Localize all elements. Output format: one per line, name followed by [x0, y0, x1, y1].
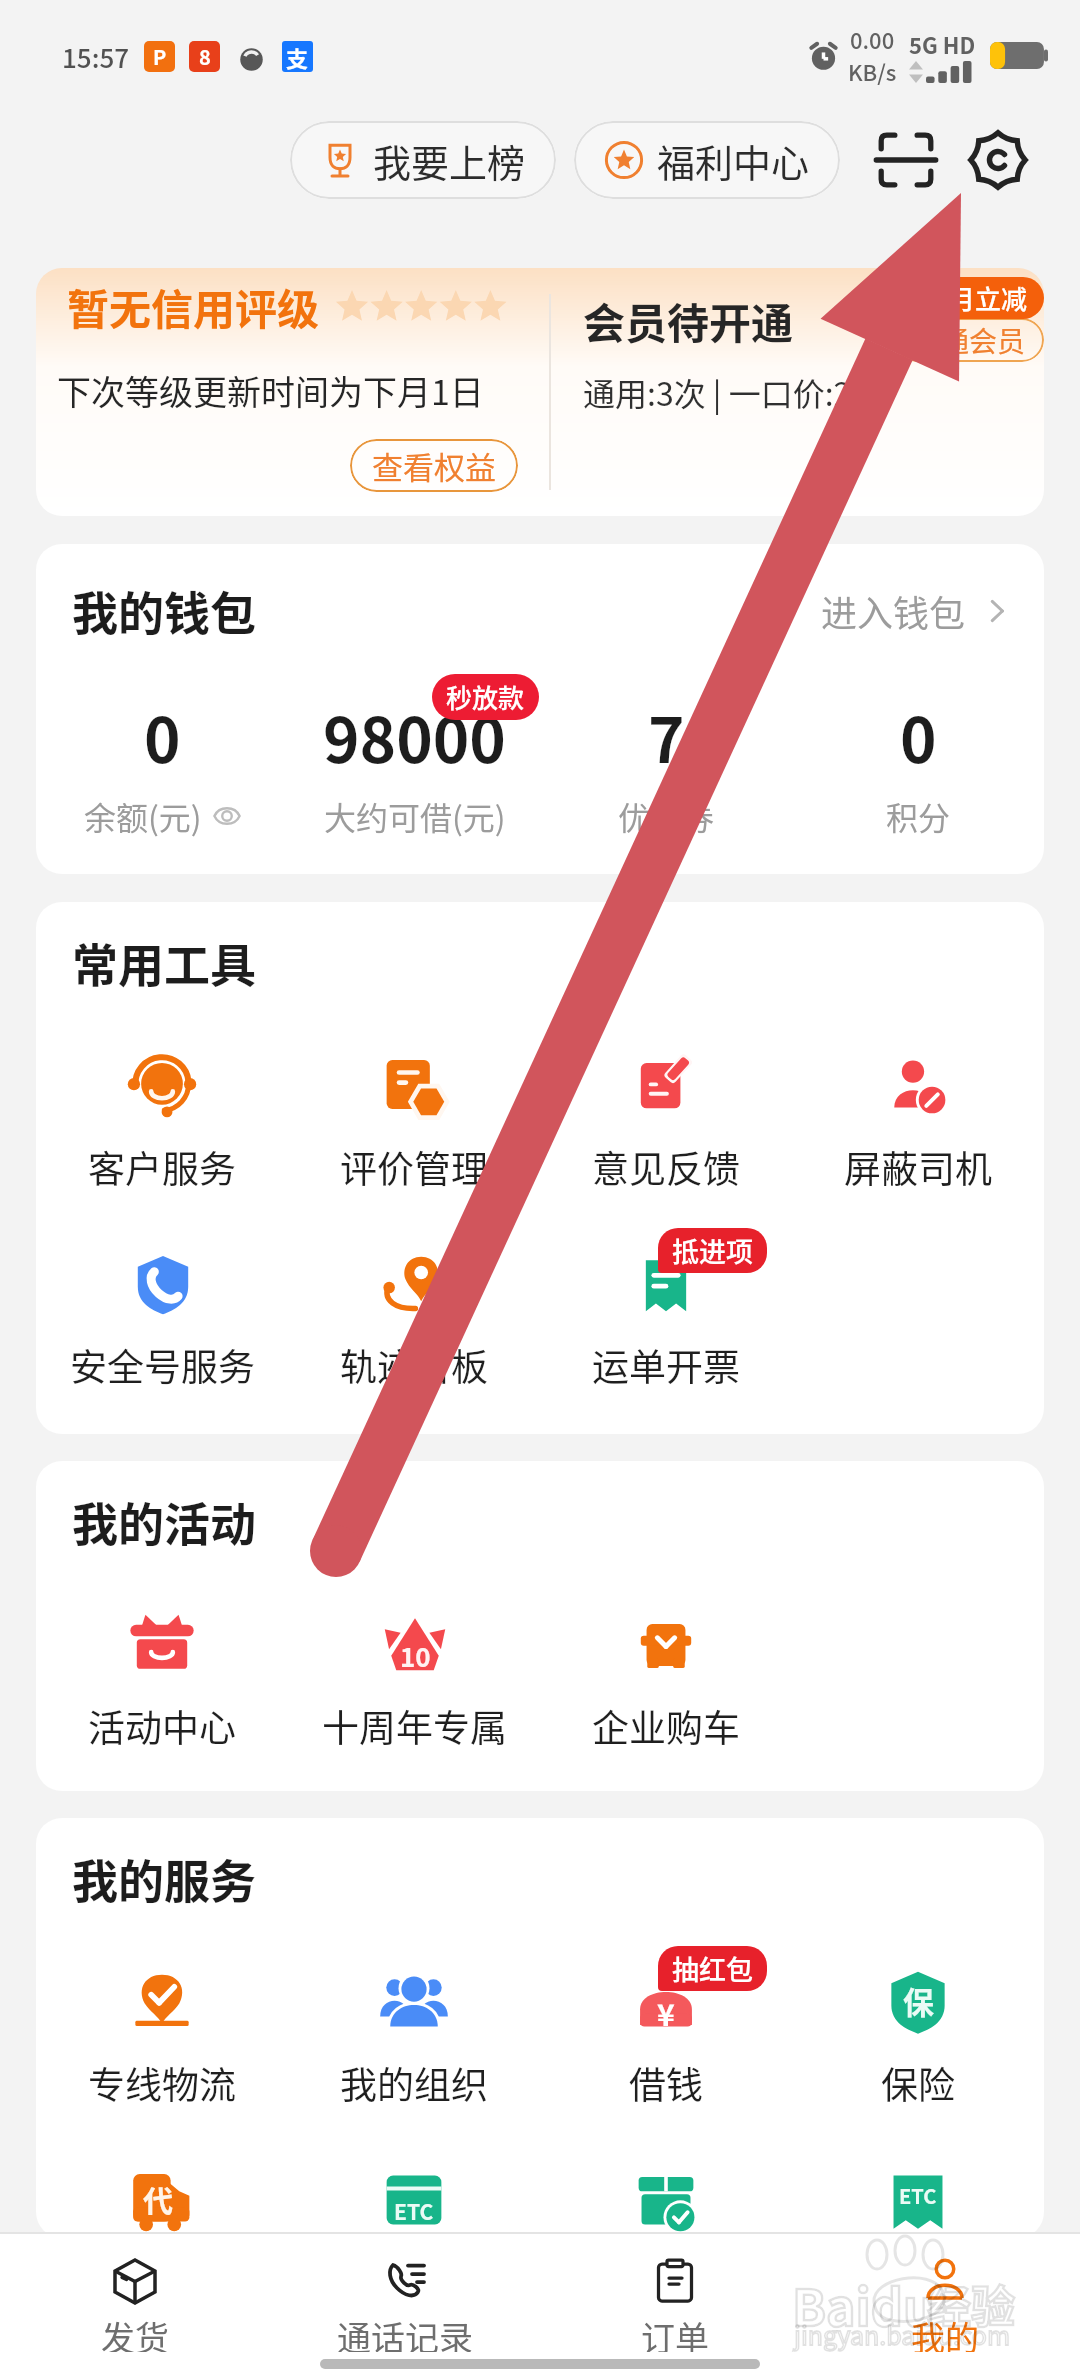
button[interactable]: 进入钱包 [821, 585, 1014, 637]
button[interactable]: 7 [540, 691, 792, 839]
staticText: 抵进项 [672, 1231, 753, 1270]
staticText: 评价管理 [340, 1140, 488, 1194]
staticText: 活动中心 [88, 1699, 236, 1753]
staticText: 10 [400, 1637, 431, 1675]
button[interactable]: 保 [792, 1964, 1044, 2110]
button[interactable]: 订单 [540, 2256, 810, 2352]
staticText: 余额(元) [84, 793, 202, 839]
staticText: 屏蔽司机 [844, 1140, 992, 1194]
staticText: Baidu [792, 2268, 935, 2340]
staticText: 秒放款 [446, 678, 525, 716]
button[interactable]: 设置 [956, 118, 1040, 202]
staticText: 专线物流 [88, 2056, 236, 2110]
button[interactable]: 客户服务 [36, 1048, 288, 1194]
staticText: 通用:3次 | 一口价:2次 [583, 369, 884, 415]
staticText: 下次等级更新时间为下月1日 [57, 366, 484, 415]
staticText: 0 [900, 691, 937, 781]
button[interactable]: 代 [36, 2162, 288, 2238]
button[interactable]: 企业购车 [540, 1607, 792, 1753]
staticText: 我的钱包 [72, 577, 256, 644]
staticText: 通话记录 [337, 2312, 473, 2352]
staticText: 暂无信用评级 [67, 276, 320, 337]
button[interactable]: 运单开票 [540, 1246, 792, 1392]
staticText: 福利中心 [657, 133, 810, 188]
staticText: 我要上榜 [373, 133, 526, 188]
button[interactable]: 10 [288, 1607, 540, 1753]
staticText: 7 [648, 691, 685, 781]
staticText: 保 [903, 1978, 934, 2023]
button[interactable]: 0 [792, 691, 1044, 839]
staticText: 我的活动 [72, 1488, 256, 1555]
button[interactable]: ETC [792, 2162, 1044, 2238]
button[interactable]: 发货 [0, 2256, 270, 2352]
button[interactable]: 扫一扫 [864, 118, 948, 202]
staticText: 进入钱包 [821, 585, 966, 637]
staticText: ¥ [657, 1991, 675, 2034]
button[interactable]: 会员待开通 [551, 268, 1044, 516]
staticText: 保险 [881, 2056, 955, 2110]
staticText: 企业购车 [592, 1699, 740, 1753]
staticText: KB/s [848, 55, 897, 87]
button[interactable]: 福利中心 [574, 121, 840, 199]
button[interactable]: 活动中心 [36, 1607, 288, 1753]
staticText: 十周年专属 [322, 1699, 507, 1753]
staticText: 订单 [641, 2312, 709, 2352]
button[interactable]: 我的组织 [288, 1964, 540, 2110]
staticText: 首月立减 [923, 279, 1028, 317]
button[interactable]: 评价管理 [288, 1048, 540, 1194]
staticText: 优惠券 [618, 793, 715, 839]
staticText: 轨迹看板 [340, 1338, 488, 1392]
staticText: ETC [394, 2196, 434, 2226]
staticText: 大约可借(元) [324, 793, 506, 839]
button[interactable]: ETC [288, 2162, 540, 2238]
staticText: 我的组织 [340, 2056, 488, 2110]
staticText: P [153, 42, 167, 71]
button[interactable]: 98000 [288, 691, 540, 839]
button[interactable]: 暂无信用评级 [36, 268, 549, 516]
staticText: 支 [286, 41, 309, 72]
button[interactable]: 轨迹看板 [288, 1246, 540, 1392]
button[interactable]: 我的 [810, 2256, 1080, 2352]
staticText: 0 [144, 691, 181, 781]
staticText: 我的 [911, 2312, 979, 2352]
staticText: 开通会员 [913, 320, 1026, 361]
staticText: 积分 [886, 793, 951, 839]
button[interactable]: 安全号服务 [36, 1246, 288, 1392]
staticText: 98000 [323, 691, 506, 781]
button[interactable] [540, 2162, 792, 2238]
staticText: 查看权益 [372, 443, 496, 488]
button[interactable]: 我要上榜 [290, 121, 556, 199]
button[interactable]: ¥ [540, 1964, 792, 2110]
staticText: 发货 [101, 2312, 169, 2352]
staticText: 意见反馈 [592, 1140, 740, 1194]
staticText: 抽红包 [672, 1949, 753, 1988]
button[interactable]: 屏蔽司机 [792, 1048, 1044, 1194]
staticText: 15:57 [62, 38, 130, 76]
button[interactable]: 查看权益 [350, 439, 518, 492]
button[interactable]: 通话记录 [270, 2256, 540, 2352]
staticText: 8 [199, 42, 211, 71]
staticText: 借钱 [629, 2056, 703, 2110]
staticText: 经验 [927, 2272, 1015, 2336]
staticText: ETC [899, 2181, 937, 2210]
staticText: 运单开票 [592, 1338, 740, 1392]
staticText: jingyan.baidu.com [794, 2316, 1011, 2352]
staticText: 我的服务 [72, 1845, 256, 1912]
button[interactable]: 专线物流 [36, 1964, 288, 2110]
staticText: 客户服务 [88, 1140, 236, 1194]
staticText: 会员待开通 [583, 290, 794, 351]
button[interactable]: 0 [36, 691, 288, 839]
staticText: 0.00 [850, 23, 895, 55]
button[interactable]: 意见反馈 [540, 1048, 792, 1194]
staticText: 常用工具 [72, 929, 256, 996]
staticText: 安全号服务 [70, 1338, 255, 1392]
staticText: 代 [143, 2177, 173, 2220]
staticText: 5G HD [909, 28, 976, 60]
